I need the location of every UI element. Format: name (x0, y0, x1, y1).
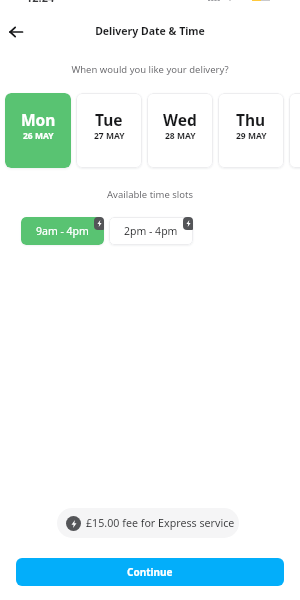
button[interactable]: 9am - 4pm (21, 217, 104, 245)
staticText: 26 MAY (23, 130, 54, 142)
staticText: £15.00 fee for Express service (86, 516, 235, 531)
staticText: Tue (95, 109, 123, 130)
staticText: Mon (21, 109, 56, 130)
staticText: 29 MAY (236, 130, 267, 142)
button[interactable]: Wed (147, 93, 213, 168)
staticText: 2pm - 4pm (124, 224, 178, 238)
staticText: 27 MAY (94, 130, 125, 142)
staticText: 12:24 (26, 0, 66, 4)
staticText: Delivery Date & Time (0, 24, 300, 38)
staticText: Thu (236, 109, 266, 130)
staticText: Wed (163, 109, 197, 130)
staticText: 28 MAY (165, 130, 196, 142)
button[interactable]: Mon (5, 93, 71, 168)
button[interactable]: Thu (218, 93, 284, 168)
button[interactable]: Fri (289, 93, 300, 168)
button[interactable]: Back (2, 18, 29, 45)
button[interactable]: Tue (76, 93, 142, 168)
staticText: When would you like your delivery? (0, 63, 300, 76)
staticText: Continue (127, 565, 173, 579)
staticText: 9am - 4pm (36, 224, 89, 238)
button[interactable]: Continue (16, 558, 284, 586)
staticText: Available time slots (0, 188, 300, 201)
button[interactable]: £15.00 fee for Express service (57, 508, 239, 538)
button[interactable]: 2pm - 4pm (109, 217, 193, 245)
